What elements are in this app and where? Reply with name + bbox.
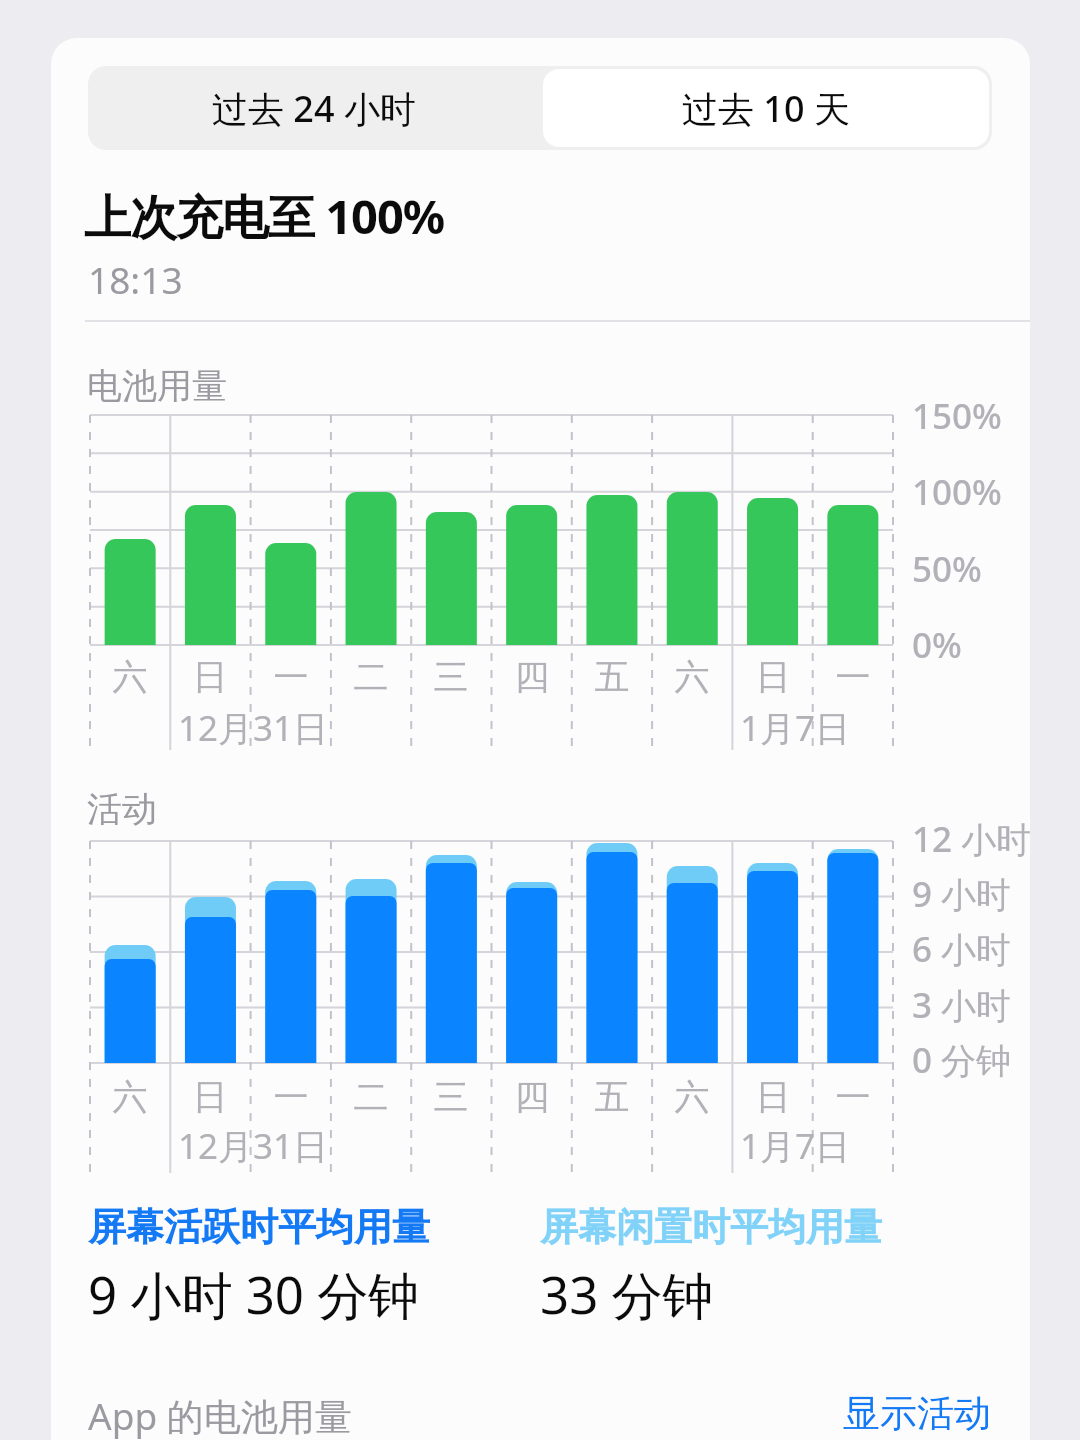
staticText: 150% — [912, 392, 1002, 440]
staticText: 屏幕闲置时平均用量 — [540, 1203, 882, 1251]
staticText: 一 — [251, 1075, 331, 1119]
staticText: 日 — [170, 1075, 250, 1119]
staticText: 50% — [912, 545, 982, 593]
staticText: 显示活动 — [843, 1390, 991, 1437]
staticText: 100% — [912, 468, 1002, 516]
staticText: 五 — [572, 1075, 652, 1119]
staticText: 3 小时 — [912, 981, 1012, 1029]
staticText: 0 分钟 — [912, 1036, 1012, 1084]
staticText: App 的电池用量 — [88, 1390, 352, 1440]
staticText: 一 — [813, 655, 893, 699]
staticText: 日 — [733, 655, 813, 699]
staticText: 六 — [652, 1075, 732, 1119]
staticText: 三 — [411, 655, 491, 699]
staticText: 四 — [492, 1075, 572, 1119]
staticText: 33 分钟 — [540, 1259, 714, 1329]
staticText: 1月7日 — [740, 704, 851, 752]
staticText: 活动 — [87, 787, 157, 831]
button[interactable]: 屏幕活跃时平均用量 — [88, 1203, 430, 1329]
staticText: 9 小时 — [912, 870, 1012, 918]
staticText: 12月31日 — [178, 704, 329, 752]
staticText: 日 — [733, 1075, 813, 1119]
staticText: 六 — [652, 655, 732, 699]
staticText: 二 — [331, 1075, 411, 1119]
button[interactable]: 过去 24 小时 — [88, 66, 540, 150]
staticText: 12 小时 — [912, 815, 1032, 863]
staticText: 日 — [170, 655, 250, 699]
staticText: 一 — [813, 1075, 893, 1119]
staticText: 12月31日 — [178, 1122, 329, 1170]
staticText: 屏幕活跃时平均用量 — [88, 1203, 430, 1251]
staticText: 二 — [331, 655, 411, 699]
staticText: 一 — [251, 655, 331, 699]
staticText: 过去 24 小时 — [212, 84, 416, 133]
staticText: 六 — [90, 1075, 170, 1119]
staticText: 6 小时 — [912, 925, 1012, 973]
staticText: 0% — [912, 621, 962, 669]
staticText: 电池用量 — [87, 364, 227, 408]
staticText: 六 — [90, 655, 170, 699]
staticText: 四 — [492, 655, 572, 699]
staticText: 1月7日 — [740, 1122, 851, 1170]
staticText: 三 — [411, 1075, 491, 1119]
staticText: 五 — [572, 655, 652, 699]
staticText: 上次充电至 100% — [84, 184, 445, 248]
staticText: 18:13 — [88, 254, 183, 304]
button[interactable]: 屏幕闲置时平均用量 — [540, 1203, 882, 1329]
staticText: 9 小时 30 分钟 — [88, 1259, 420, 1329]
button[interactable]: 过去 10 天 — [543, 69, 989, 147]
staticText: 过去 10 天 — [682, 84, 850, 133]
button[interactable]: App 的电池用量 — [88, 1390, 352, 1440]
button[interactable]: 显示活动 — [843, 1390, 991, 1437]
